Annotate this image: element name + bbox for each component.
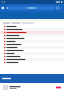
button[interactable]: Tabs bbox=[57, 7, 59, 9]
button[interactable]: More options bbox=[60, 7, 62, 9]
button[interactable]: Search or type URL bbox=[6, 6, 55, 10]
button[interactable] bbox=[0, 74, 64, 83]
button[interactable]: Home bbox=[1, 7, 4, 9]
